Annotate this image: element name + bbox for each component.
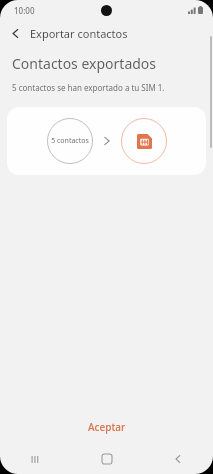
button[interactable]: 5 contactos [7,107,206,175]
button[interactable]: Aceptar [0,410,213,444]
staticText: Contactos exportados [12,54,157,73]
staticText: Exportar contactos [30,26,128,41]
staticText: Aceptar [88,420,126,434]
staticText: 10:00 [14,5,35,16]
button[interactable]: Recent apps [0,444,71,474]
button[interactable]: Back [0,20,30,46]
button[interactable]: Back [142,444,213,474]
button[interactable]: Home [71,444,142,474]
staticText: 5 contactos [51,136,89,146]
staticText: 5 contactos se han exportado a tu SIM 1. [12,82,165,93]
